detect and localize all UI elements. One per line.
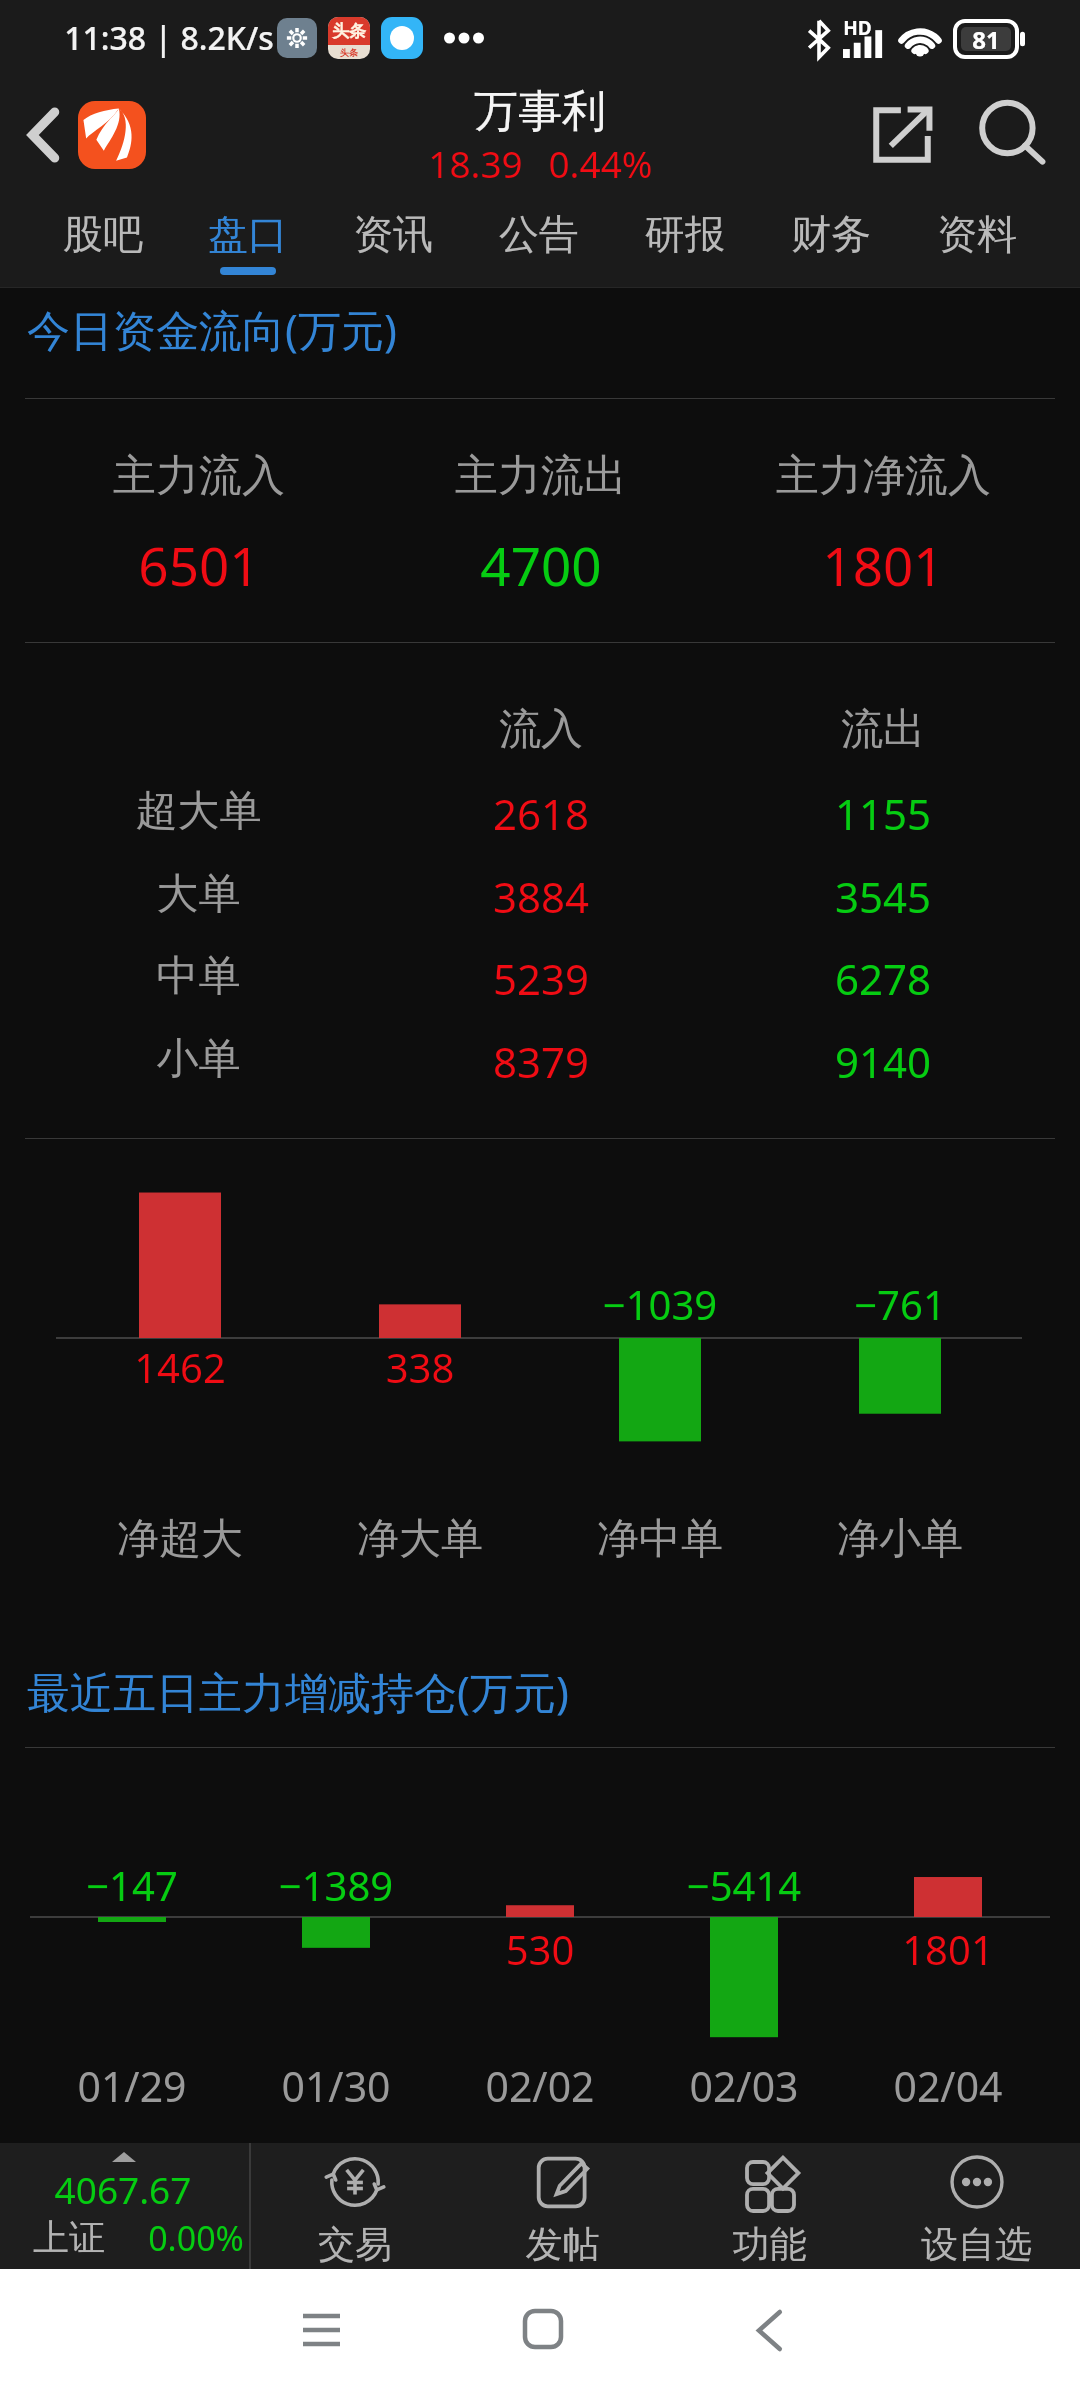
staticText: 1801 bbox=[822, 529, 944, 601]
staticText: −1389 bbox=[234, 1858, 438, 1912]
staticText: 02/02 bbox=[438, 2058, 642, 2114]
staticText: 上证 bbox=[33, 2215, 105, 2260]
button[interactable]: 4067.67 bbox=[0, 2143, 249, 2269]
staticText: 资讯 bbox=[353, 209, 433, 259]
staticText: 主力净流入 bbox=[776, 449, 991, 503]
staticText: 净中单 bbox=[540, 1513, 780, 1566]
staticText: 超大单 bbox=[27, 785, 370, 838]
staticText: 02/03 bbox=[642, 2058, 846, 2114]
staticText: 净小单 bbox=[780, 1513, 1020, 1566]
staticText: 小单 bbox=[27, 1033, 370, 1086]
staticText: 02/04 bbox=[846, 2058, 1050, 2114]
staticText: 18.39 bbox=[428, 138, 523, 188]
button[interactable]: Home bbox=[488, 2274, 598, 2384]
staticText: HD bbox=[843, 15, 872, 41]
staticText: 设自选 bbox=[873, 2221, 1080, 2268]
staticText: 01/29 bbox=[30, 2058, 234, 2114]
staticText: 流入 bbox=[370, 703, 712, 756]
button[interactable]: Back bbox=[714, 2275, 824, 2385]
staticText: 头条 bbox=[332, 21, 366, 42]
staticText: −761 bbox=[780, 1277, 1020, 1331]
staticText: 0.44% bbox=[548, 138, 653, 188]
staticText: 3545 bbox=[712, 868, 1054, 925]
staticText: 净大单 bbox=[300, 1513, 540, 1566]
button[interactable]: 资讯 bbox=[320, 192, 466, 287]
staticText: −5414 bbox=[642, 1858, 846, 1912]
staticText: 最近五日主力增减持仓(万元) bbox=[27, 1662, 569, 1721]
staticText: 流出 bbox=[712, 703, 1054, 756]
staticText: 净超大 bbox=[60, 1513, 300, 1566]
button[interactable]: App logo bbox=[78, 101, 146, 169]
staticText: 4067.67 bbox=[0, 2164, 246, 2214]
staticText: 资料 bbox=[937, 209, 1017, 259]
staticText: 6278 bbox=[712, 950, 1054, 1007]
staticText: 头条 bbox=[340, 47, 358, 58]
button[interactable]: 资料 bbox=[904, 192, 1050, 287]
button[interactable]: Share bbox=[858, 96, 946, 174]
staticText: 财务 bbox=[791, 209, 871, 259]
button[interactable]: Back bbox=[8, 95, 78, 175]
staticText: −1039 bbox=[540, 1277, 780, 1331]
staticText: 1155 bbox=[712, 785, 1054, 842]
button[interactable]: 功能 bbox=[666, 2143, 873, 2269]
staticText: 2618 bbox=[370, 785, 712, 842]
staticText: 主力流入 bbox=[113, 449, 285, 503]
staticText: −147 bbox=[30, 1858, 234, 1912]
staticText: 3884 bbox=[370, 868, 712, 925]
staticText: 大单 bbox=[27, 868, 370, 921]
staticText: 盘口 bbox=[208, 209, 288, 259]
staticText: 股吧 bbox=[63, 209, 143, 259]
button[interactable]: 设自选 bbox=[873, 2143, 1080, 2269]
staticText: 11:38 | 8.2K/s bbox=[64, 16, 274, 60]
staticText: 发帖 bbox=[459, 2221, 666, 2268]
staticText: 8379 bbox=[370, 1033, 712, 1090]
button[interactable]: 发帖 bbox=[459, 2143, 666, 2269]
button[interactable]: 交易 bbox=[251, 2143, 459, 2269]
button[interactable]: 公告 bbox=[466, 192, 612, 287]
staticText: 公告 bbox=[499, 209, 579, 259]
staticText: 338 bbox=[300, 1340, 540, 1394]
button[interactable]: Search bbox=[968, 90, 1058, 180]
button[interactable]: 盘口 bbox=[175, 192, 320, 287]
button[interactable]: 财务 bbox=[758, 192, 904, 287]
staticText: 0.00% bbox=[148, 2215, 244, 2261]
staticText: 81 bbox=[961, 23, 1011, 56]
staticText: 主力流出 bbox=[455, 449, 627, 503]
staticText: 中单 bbox=[27, 950, 370, 1003]
button[interactable]: 研报 bbox=[612, 192, 758, 287]
staticText: 功能 bbox=[666, 2221, 873, 2268]
staticText: 4700 bbox=[480, 529, 602, 601]
staticText: 9140 bbox=[712, 1033, 1054, 1090]
staticText: 6501 bbox=[138, 529, 260, 601]
staticText: 01/30 bbox=[234, 2058, 438, 2114]
staticText: 今日资金流向(万元) bbox=[27, 300, 397, 359]
staticText: 530 bbox=[438, 1922, 642, 1976]
staticText: 1801 bbox=[846, 1922, 1050, 1976]
staticText: 研报 bbox=[645, 209, 725, 259]
staticText: 交易 bbox=[251, 2221, 459, 2268]
staticText: 1462 bbox=[60, 1340, 300, 1394]
button[interactable]: Recents bbox=[266, 2275, 376, 2385]
staticText: 万事利 bbox=[474, 84, 606, 139]
staticText: 5239 bbox=[370, 950, 712, 1007]
button[interactable]: 股吧 bbox=[30, 192, 175, 287]
